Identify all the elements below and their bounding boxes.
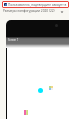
staticText: Размеры конфигурации 2020 (22) xyxy=(3,9,55,13)
staticText: Screen 1 xyxy=(8,38,19,42)
staticText: Пользователь, подтвердите аккаунт в прил… xyxy=(8,3,69,7)
other: Account xyxy=(4,3,7,6)
button[interactable]: Account xyxy=(2,1,69,8)
button[interactable]: More options xyxy=(60,10,64,14)
button[interactable]: Screen 1 xyxy=(7,38,20,42)
